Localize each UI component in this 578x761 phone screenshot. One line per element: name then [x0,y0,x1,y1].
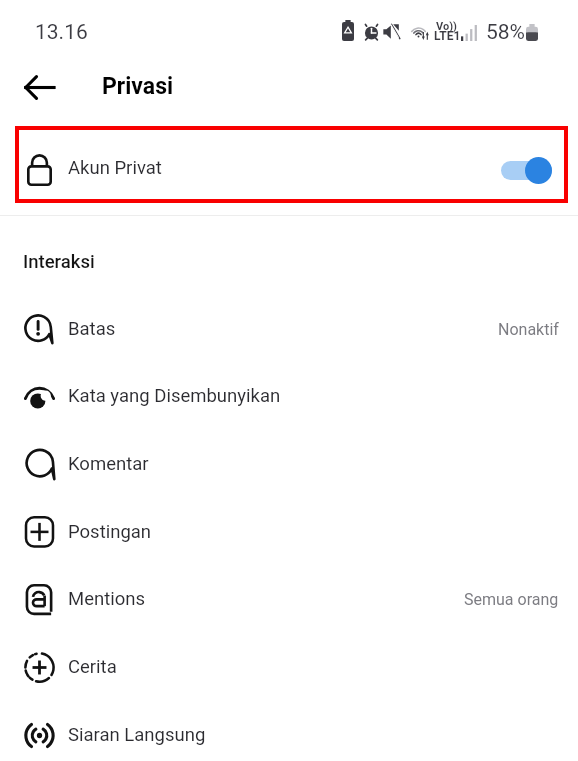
staticText: Cerita [68,656,117,678]
button[interactable]: Kata yang Disembunyikan [0,362,578,430]
staticText: Interaksi [23,251,95,273]
staticText: Siaran Langsung [68,724,206,746]
staticText: Privasi [102,73,174,100]
button[interactable]: Akun Privat [15,126,568,203]
staticText: Semua orang [464,590,559,609]
staticText: Postingan [68,521,152,543]
button[interactable]: Komentar [0,430,578,498]
staticText: Batas [68,318,116,340]
staticText: 58% [486,20,525,45]
staticText: Mentions [68,588,146,610]
staticText: Komentar [68,453,149,475]
button[interactable]: Batas [0,295,578,363]
button[interactable]: Mentions [0,565,578,633]
staticText: Akun Privat [68,157,162,179]
button[interactable]: Cerita [0,633,578,701]
staticText: Vo)) [436,20,457,33]
staticText: 13.16 [35,20,88,45]
staticText: Kata yang Disembunyikan [68,385,281,407]
staticText: Nonaktif [498,320,559,339]
button[interactable]: Private account toggle [500,156,552,185]
button[interactable]: Siaran Langsung [0,701,578,761]
button[interactable]: Postingan [0,498,578,566]
staticText: LTE1 [434,29,461,43]
button[interactable]: Back [14,62,64,112]
